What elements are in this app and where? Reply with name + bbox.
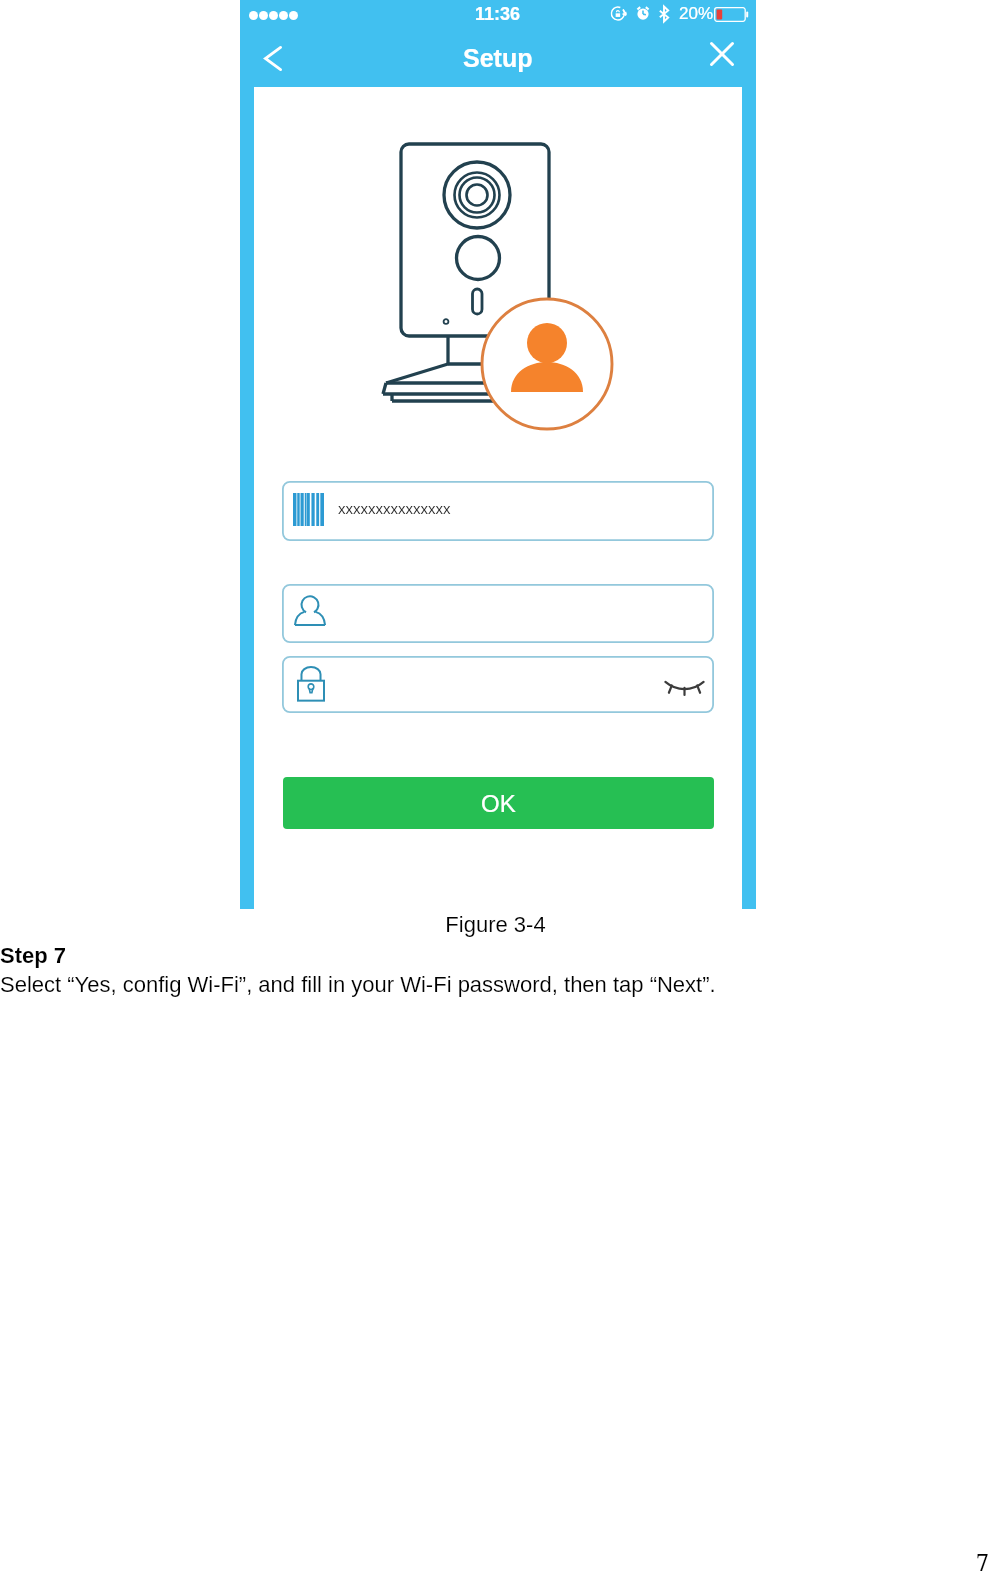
staticText: 20% — [679, 4, 714, 23]
button[interactable]: OK — [283, 777, 714, 829]
staticText: Figure 3-4 — [0, 912, 991, 937]
button[interactable]: User name — [282, 584, 714, 643]
button[interactable]: Password — [282, 656, 714, 713]
staticText: Setup — [463, 44, 533, 72]
button[interactable]: Close — [699, 29, 745, 79]
button[interactable]: Show password — [659, 667, 709, 707]
staticText: Step 7 — [0, 943, 67, 968]
button[interactable]: Device serial number — [282, 481, 714, 541]
staticText: OK — [481, 790, 516, 817]
button[interactable]: Back — [251, 33, 295, 83]
staticText: Select “Yes, config Wi-Fi”, and fill in … — [0, 972, 716, 997]
staticText: xxxxxxxxxxxxxxx — [338, 500, 451, 517]
staticText: 7 — [976, 1546, 989, 1571]
staticText: 11:36 — [475, 4, 521, 24]
